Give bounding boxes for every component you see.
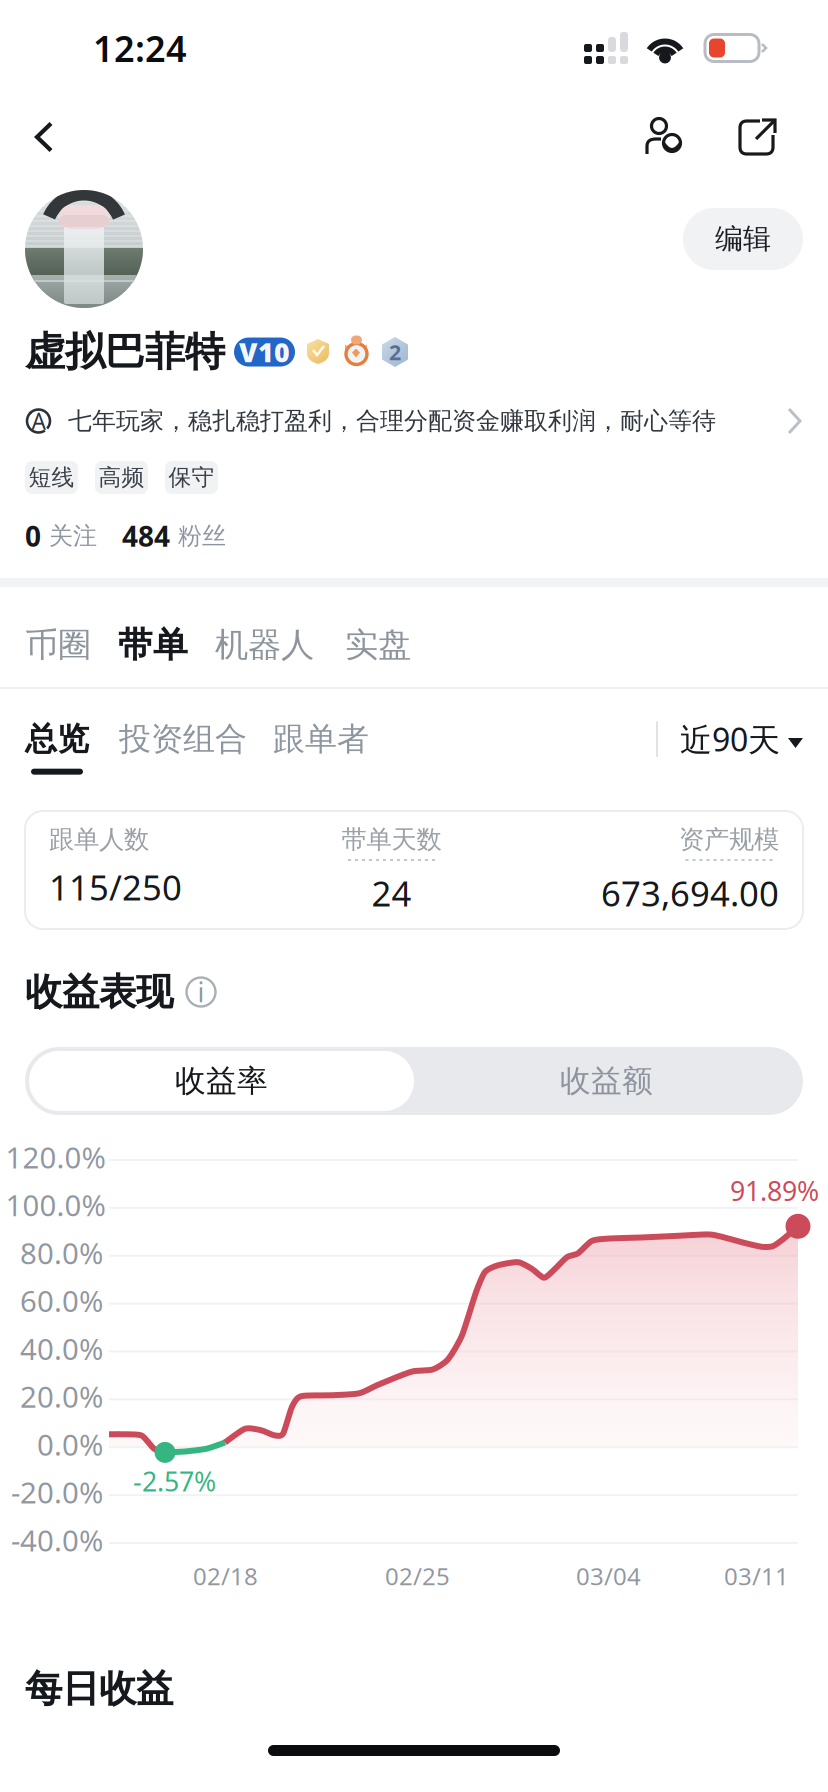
staticText: 12:24: [93, 24, 187, 72]
staticText: 484: [122, 517, 170, 555]
staticText: 60.0%: [20, 1281, 103, 1320]
staticText: 80.0%: [20, 1233, 103, 1272]
staticText: 115/250: [49, 864, 182, 910]
staticText: 100.0%: [5, 1185, 105, 1224]
staticText: -40.0%: [11, 1520, 103, 1559]
staticText: 关注: [49, 521, 97, 551]
staticText: -2.57%: [133, 1463, 216, 1499]
button[interactable]: 带单: [118, 624, 188, 666]
staticText: 虚拟巴菲特: [25, 327, 225, 376]
button[interactable]: 总览: [25, 719, 89, 775]
staticText: 40.0%: [20, 1329, 103, 1368]
staticText: 实盘: [345, 624, 411, 665]
staticText: 高频: [98, 464, 144, 491]
staticText: 粉丝: [178, 521, 226, 551]
staticText: 20.0%: [20, 1377, 103, 1416]
button[interactable]: 近90天: [680, 718, 803, 760]
staticText: 跟单人数: [49, 824, 149, 855]
staticText: 2: [389, 338, 401, 366]
staticText: 七年玩家，稳扎稳打盈利，合理分配资金赚取利润，耐心等待: [68, 406, 716, 436]
staticText: 币圈: [25, 624, 91, 665]
staticText: 02/18: [193, 1560, 258, 1592]
staticText: 投资组合: [119, 719, 247, 759]
button[interactable]: A: [25, 403, 803, 439]
staticText: 跟单者: [273, 719, 369, 759]
staticText: 673,694.00: [601, 870, 779, 916]
staticText: 带单天数: [341, 824, 441, 855]
staticText: 保守: [168, 464, 214, 491]
staticText: 收益率: [175, 1062, 268, 1100]
staticText: 编辑: [715, 222, 771, 256]
staticText: 03/11: [724, 1560, 789, 1592]
button[interactable]: Share: [721, 103, 794, 171]
staticText: V10: [239, 334, 290, 370]
button[interactable]: 实盘: [345, 624, 411, 665]
button[interactable]: Copy traders: [629, 103, 699, 171]
button[interactable]: 收益额: [414, 1051, 799, 1111]
button[interactable]: 编辑: [683, 208, 803, 270]
staticText: 24: [371, 870, 411, 916]
staticText: 短线: [28, 464, 74, 491]
staticText: 资产规模: [679, 824, 779, 855]
staticText: 机器人: [215, 624, 314, 665]
staticText: 每日收益: [25, 1666, 173, 1712]
button[interactable]: 投资组合: [119, 719, 247, 775]
staticText: -20.0%: [11, 1473, 103, 1512]
staticText: i: [197, 974, 204, 1010]
button[interactable]: 机器人: [215, 624, 314, 665]
staticText: 近90天: [680, 718, 780, 760]
button[interactable]: Back: [20, 105, 77, 168]
staticText: 0: [25, 517, 41, 555]
staticText: 02/25: [385, 1560, 450, 1592]
button[interactable]: 收益率: [29, 1051, 414, 1111]
button[interactable]: 跟单者: [273, 719, 369, 775]
staticText: 总览: [25, 719, 89, 759]
staticText: 收益额: [560, 1062, 653, 1100]
staticText: 91.89%: [730, 1173, 819, 1208]
staticText: 0.0%: [37, 1425, 103, 1464]
staticText: 收益表现: [25, 969, 173, 1015]
staticText: 03/04: [576, 1560, 641, 1592]
staticText: 120.0%: [5, 1137, 105, 1176]
staticText: 带单: [118, 624, 188, 666]
button[interactable]: 币圈: [25, 624, 91, 665]
staticText: A: [31, 406, 45, 436]
